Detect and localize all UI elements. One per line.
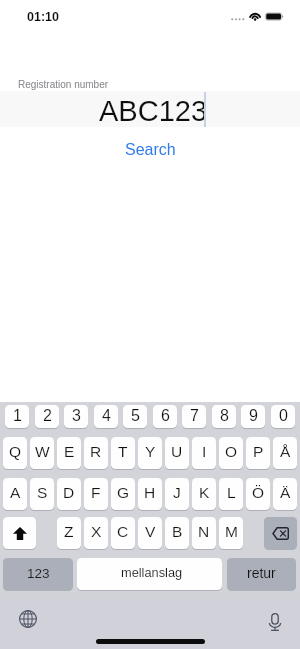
staticText: D bbox=[63, 484, 75, 501]
staticText: E bbox=[64, 443, 75, 460]
staticText: mellanslag bbox=[121, 565, 183, 579]
button[interactable]: N bbox=[192, 517, 216, 549]
staticText: 3 bbox=[72, 407, 81, 425]
staticText: retur bbox=[247, 565, 276, 581]
staticText: U bbox=[171, 443, 183, 460]
staticText: ABC123 bbox=[99, 95, 208, 127]
button[interactable]: Q bbox=[3, 437, 27, 469]
staticText: C bbox=[117, 523, 129, 540]
staticText: Q bbox=[9, 443, 22, 460]
staticText: V bbox=[145, 523, 156, 540]
button[interactable]: B bbox=[165, 517, 189, 549]
staticText: L bbox=[227, 484, 236, 501]
button[interactable]: 6 bbox=[153, 405, 177, 428]
button[interactable]: 8 bbox=[212, 405, 236, 428]
staticText: 2 bbox=[43, 407, 52, 425]
button[interactable]: Å bbox=[273, 437, 297, 469]
button[interactable]: S bbox=[30, 478, 54, 510]
button[interactable]: O bbox=[219, 437, 243, 469]
button[interactable]: H bbox=[138, 478, 162, 510]
button[interactable]: P bbox=[246, 437, 270, 469]
button[interactable]: X bbox=[84, 517, 108, 549]
button[interactable]: Backspace bbox=[264, 517, 297, 549]
staticText: 1 bbox=[13, 407, 22, 425]
button[interactable]: mellanslag bbox=[77, 558, 222, 590]
button[interactable]: Search bbox=[0, 139, 300, 161]
staticText: K bbox=[199, 484, 210, 501]
staticText: 7 bbox=[190, 407, 199, 425]
staticText: Registration number bbox=[18, 79, 109, 90]
staticText: Ä bbox=[280, 484, 291, 501]
button[interactable]: Dictation bbox=[261, 608, 289, 636]
staticText: T bbox=[118, 443, 128, 460]
staticText: Search bbox=[125, 141, 176, 159]
staticText: G bbox=[117, 484, 130, 501]
button[interactable]: 123 bbox=[3, 558, 73, 590]
button[interactable]: 2 bbox=[35, 405, 59, 428]
staticText: 4 bbox=[102, 407, 111, 425]
button[interactable]: 9 bbox=[241, 405, 265, 428]
staticText: I bbox=[202, 443, 207, 460]
button[interactable]: 3 bbox=[64, 405, 88, 428]
button[interactable]: V bbox=[138, 517, 162, 549]
staticText: Y bbox=[145, 443, 156, 460]
button[interactable]: Y bbox=[138, 437, 162, 469]
button[interactable]: M bbox=[219, 517, 243, 549]
button[interactable]: 0 bbox=[271, 405, 295, 428]
button[interactable]: I bbox=[192, 437, 216, 469]
staticText: Z bbox=[64, 523, 74, 540]
button[interactable]: C bbox=[111, 517, 135, 549]
button[interactable]: retur bbox=[227, 558, 296, 590]
button[interactable]: ABC123 bbox=[0, 91, 300, 127]
staticText: J bbox=[173, 484, 181, 501]
button[interactable]: R bbox=[84, 437, 108, 469]
staticText: H bbox=[144, 484, 156, 501]
staticText: 9 bbox=[249, 407, 258, 425]
staticText: 8 bbox=[220, 407, 229, 425]
button[interactable]: T bbox=[111, 437, 135, 469]
staticText: B bbox=[172, 523, 183, 540]
staticText: N bbox=[198, 523, 210, 540]
staticText: Å bbox=[280, 443, 291, 460]
staticText: 5 bbox=[131, 407, 140, 425]
button[interactable]: 4 bbox=[94, 405, 118, 428]
staticText: 0 bbox=[279, 407, 288, 425]
button[interactable]: L bbox=[219, 478, 243, 510]
button[interactable]: Ä bbox=[273, 478, 297, 510]
button[interactable]: Z bbox=[57, 517, 81, 549]
staticText: A bbox=[10, 484, 21, 501]
staticText: W bbox=[35, 443, 50, 460]
button[interactable]: W bbox=[30, 437, 54, 469]
button[interactable]: D bbox=[57, 478, 81, 510]
button[interactable]: K bbox=[192, 478, 216, 510]
button[interactable]: Ö bbox=[246, 478, 270, 510]
staticText: M bbox=[225, 523, 238, 540]
staticText: F bbox=[91, 484, 101, 501]
staticText: O bbox=[225, 443, 238, 460]
button[interactable]: F bbox=[84, 478, 108, 510]
staticText: X bbox=[91, 523, 102, 540]
button[interactable]: G bbox=[111, 478, 135, 510]
staticText: 123 bbox=[27, 566, 50, 581]
button[interactable]: 7 bbox=[182, 405, 206, 428]
button[interactable]: U bbox=[165, 437, 189, 469]
staticText: 6 bbox=[161, 407, 170, 425]
button[interactable]: J bbox=[165, 478, 189, 510]
button[interactable]: 5 bbox=[123, 405, 147, 428]
button[interactable]: 1 bbox=[5, 405, 29, 428]
staticText: S bbox=[37, 484, 48, 501]
button[interactable]: Shift bbox=[3, 517, 36, 549]
button[interactable]: Switch keyboard language bbox=[14, 605, 42, 633]
staticText: P bbox=[253, 443, 264, 460]
button[interactable]: A bbox=[3, 478, 27, 510]
button[interactable]: E bbox=[57, 437, 81, 469]
staticText: Ö bbox=[252, 484, 265, 501]
staticText: 01:10 bbox=[27, 10, 59, 24]
staticText: R bbox=[90, 443, 102, 460]
